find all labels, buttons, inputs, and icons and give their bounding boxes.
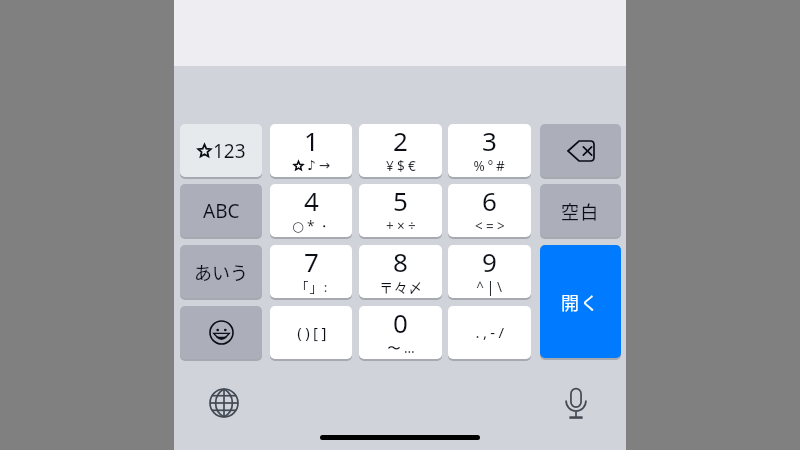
staticText: ()[]: [297, 322, 330, 342]
staticText: 9: [482, 245, 497, 279]
button[interactable]: Backspace: [540, 124, 621, 177]
staticText: 123: [213, 138, 246, 164]
staticText: <=>: [475, 217, 508, 235]
staticText: 8: [393, 245, 408, 279]
button[interactable]: 9: [448, 245, 531, 298]
staticText: ABC: [203, 198, 240, 224]
button[interactable]: 0: [359, 306, 442, 359]
staticText: 「」:: [295, 277, 329, 296]
button[interactable]: 6: [448, 184, 531, 237]
staticText: 4: [304, 184, 319, 218]
staticText: 3: [482, 124, 497, 158]
staticText: 〒々〆: [379, 277, 423, 297]
staticText: 開く: [561, 289, 600, 315]
staticText: 〜…: [387, 339, 418, 357]
button[interactable]: 5: [359, 184, 442, 237]
button[interactable]: 空白: [540, 184, 621, 237]
staticText: ^|\: [476, 278, 505, 296]
button[interactable]: Dictation: [558, 385, 594, 421]
staticText: +×÷: [386, 217, 419, 235]
button[interactable]: ABC: [180, 184, 262, 237]
staticText: 空白: [561, 198, 600, 224]
staticText: .,-/: [475, 322, 508, 342]
button[interactable]: 3: [448, 124, 531, 177]
staticText: 5: [393, 184, 408, 218]
button[interactable]: Change keyboard: [206, 385, 242, 421]
staticText: 2: [393, 124, 408, 158]
staticText: あいう: [194, 259, 248, 285]
staticText: 7: [304, 245, 319, 279]
button[interactable]: .,-/: [448, 306, 531, 359]
button[interactable]: 開く: [540, 245, 621, 358]
button[interactable]: Emoji: [180, 306, 262, 359]
staticText: 6: [482, 184, 497, 218]
button[interactable]: 4: [270, 184, 352, 237]
staticText: %°#: [473, 157, 508, 175]
button[interactable]: 123: [180, 124, 262, 177]
button[interactable]: 8: [359, 245, 442, 298]
staticText: 0: [393, 306, 408, 340]
button[interactable]: ()[]: [270, 306, 352, 359]
button[interactable]: 2: [359, 124, 442, 177]
button[interactable]: あいう: [180, 245, 262, 298]
staticText: ♪→: [307, 157, 333, 173]
staticText: 1: [304, 124, 319, 158]
button[interactable]: 1: [270, 124, 352, 177]
button[interactable]: 7: [270, 245, 352, 298]
staticText: ○*・: [292, 217, 334, 235]
staticText: ¥$€: [386, 157, 419, 175]
